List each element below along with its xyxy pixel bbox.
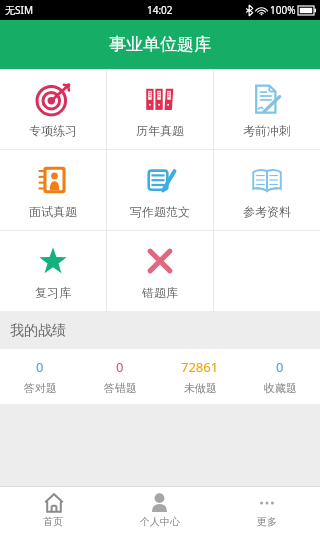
staticText: 考前冲刺 <box>243 123 291 138</box>
button[interactable]: 面试真题 <box>0 150 106 230</box>
staticText: 参考资料 <box>243 204 291 219</box>
button[interactable]: 首页 <box>0 487 106 533</box>
staticText: 14:02 <box>147 3 173 17</box>
staticText: 专项练习 <box>29 123 77 138</box>
staticText: 历年真题 <box>136 123 184 138</box>
button[interactable]: 专项练习 <box>0 69 106 149</box>
staticText: 未做题 <box>184 381 217 395</box>
staticText: 面试真题 <box>29 204 77 219</box>
staticText: 100% <box>270 3 296 17</box>
staticText: 更多 <box>257 515 277 528</box>
staticText: 错题库 <box>142 285 178 300</box>
staticText: 个人中心 <box>140 515 180 528</box>
staticText: 事业单位题库 <box>109 34 211 55</box>
button[interactable]: 更多 <box>213 487 320 533</box>
staticText: 0 <box>116 358 124 376</box>
button[interactable]: 考前冲刺 <box>214 69 320 149</box>
button[interactable]: 72861 <box>160 349 240 404</box>
button[interactable]: 0 <box>0 349 80 404</box>
staticText: 答错题 <box>104 381 137 395</box>
staticText: 写作题范文 <box>130 204 190 219</box>
staticText: 0 <box>36 358 44 376</box>
button[interactable]: 复习库 <box>0 231 106 311</box>
staticText: 0 <box>276 358 284 376</box>
button[interactable]: 0 <box>240 349 320 404</box>
staticText: 无SIM <box>5 3 33 17</box>
button[interactable]: 写作题范文 <box>107 150 213 230</box>
staticText: 我的战绩 <box>10 322 66 340</box>
staticText: 首页 <box>43 515 63 528</box>
staticText: 72861 <box>181 358 219 376</box>
button[interactable]: 参考资料 <box>214 150 320 230</box>
staticText: 复习库 <box>35 285 71 300</box>
button[interactable]: 错题库 <box>107 231 213 311</box>
button[interactable]: 历年真题 <box>107 69 213 149</box>
button[interactable]: 个人中心 <box>106 487 213 533</box>
staticText: 收藏题 <box>264 381 297 395</box>
button[interactable]: 0 <box>80 349 160 404</box>
staticText: 答对题 <box>24 381 57 395</box>
